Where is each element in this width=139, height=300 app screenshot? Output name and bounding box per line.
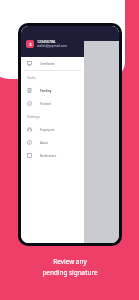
staticText: wallet@yopmail.com (37, 44, 68, 48)
staticText: Notifications (40, 154, 57, 158)
button[interactable]: Finished (21, 97, 84, 110)
button[interactable]: 12345678A (21, 26, 84, 57)
staticText: pending signature (42, 268, 98, 277)
button[interactable]: Certificates (21, 57, 84, 70)
button[interactable]: Fingerprint (21, 123, 84, 136)
button[interactable]: Pending (21, 84, 84, 97)
button[interactable]: About (21, 136, 84, 149)
staticText: Fingerprint (40, 128, 55, 132)
staticText: Certificates (40, 62, 55, 66)
staticText: About (40, 141, 48, 145)
staticText: Pending (40, 89, 52, 93)
staticText: Finished (40, 102, 51, 106)
staticText: 12345678A (37, 39, 56, 44)
staticText: Review any (53, 257, 87, 266)
button[interactable]: Notifications (21, 149, 84, 162)
staticText: Tasks (27, 75, 36, 80)
staticText: Settings (27, 114, 40, 119)
